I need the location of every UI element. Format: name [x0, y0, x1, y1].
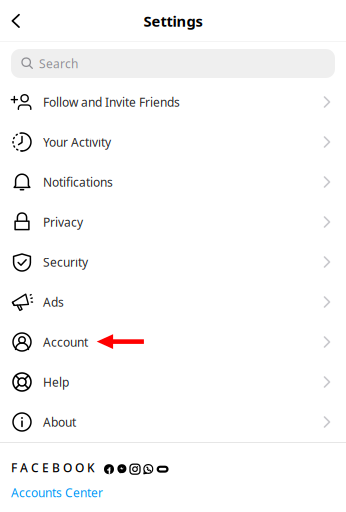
staticText: Settings [143, 11, 202, 31]
button[interactable]: Security [0, 242, 346, 282]
staticText: Account [43, 334, 88, 350]
button[interactable]: Search [11, 49, 335, 78]
staticText: Notifications [43, 174, 113, 190]
staticText: Ads [43, 294, 64, 310]
staticText: Privacy [43, 214, 83, 230]
button[interactable]: Notifications [0, 162, 346, 202]
button[interactable]: Account [0, 322, 346, 362]
button[interactable]: Accounts Center [11, 485, 103, 500]
button[interactable]: Your Activity [0, 122, 346, 162]
staticText: Security [43, 254, 88, 270]
staticText: Follow and Invite Friends [43, 94, 180, 110]
button[interactable]: Ads [0, 282, 346, 322]
button[interactable]: About [0, 402, 346, 442]
staticText: F A C E B O O K [11, 460, 95, 476]
staticText: About [43, 414, 76, 430]
button[interactable]: Help [0, 362, 346, 402]
staticText: Accounts Center [11, 485, 103, 500]
staticText: Your Activity [43, 134, 111, 150]
button[interactable]: Privacy [0, 202, 346, 242]
staticText: Help [43, 374, 69, 390]
button[interactable]: Follow and Invite Friends [0, 82, 346, 122]
button[interactable]: Back [0, 3, 35, 38]
staticText: Search [39, 55, 78, 71]
